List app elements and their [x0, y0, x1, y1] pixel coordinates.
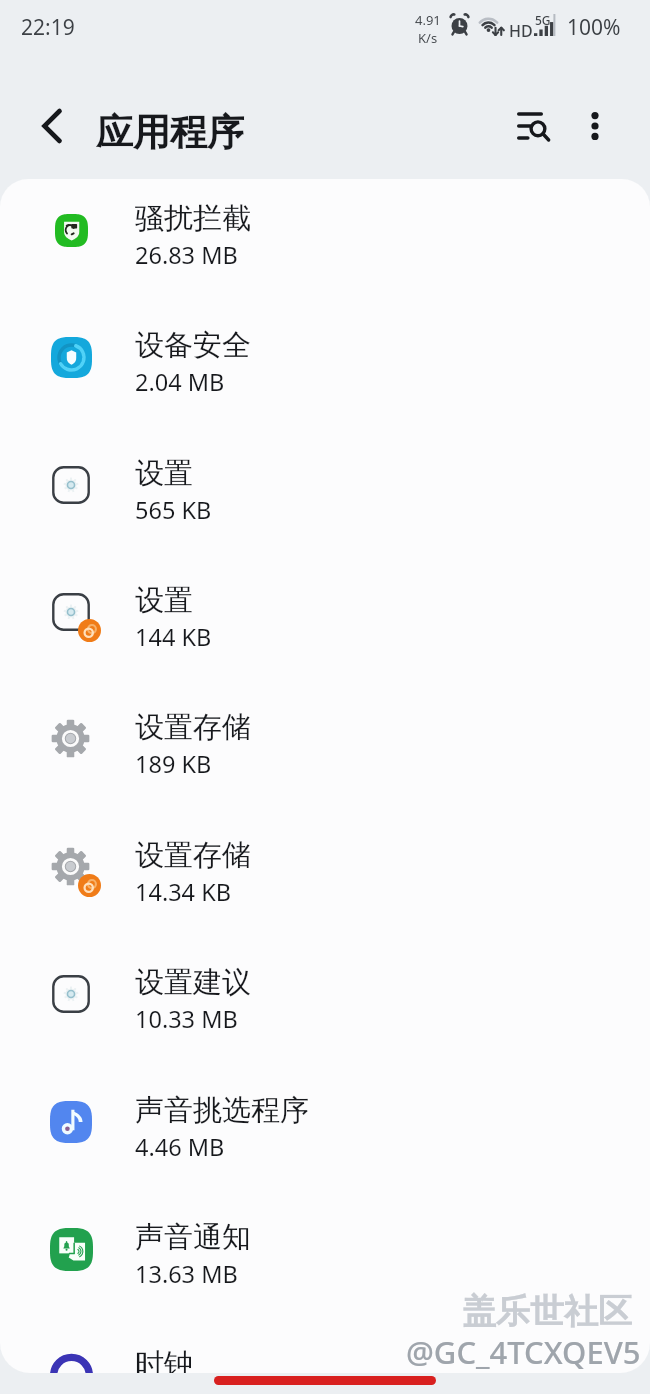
- staticText: 4.46 MB: [135, 1131, 225, 1163]
- staticText: 2.04 MB: [135, 366, 225, 398]
- staticText: 100%: [567, 13, 621, 42]
- staticText: 设置存储: [135, 837, 251, 874]
- button[interactable]: 设置: [0, 552, 650, 679]
- staticText: 4.91: [415, 11, 441, 29]
- button[interactable]: Back: [24, 98, 80, 154]
- staticText: 22:19: [21, 13, 75, 42]
- staticText: 26.83 MB: [135, 239, 238, 271]
- button[interactable]: 设置建议: [0, 934, 650, 1061]
- staticText: 设置存储: [135, 709, 251, 746]
- staticText: 14.34 KB: [135, 876, 231, 908]
- staticText: 设置建议: [135, 964, 251, 1001]
- staticText: 设置: [135, 582, 193, 619]
- staticText: 声音挑选程序: [135, 1092, 309, 1129]
- button[interactable]: 设置存储: [0, 807, 650, 934]
- staticText: 声音通知: [135, 1219, 251, 1256]
- staticText: 10.33 MB: [135, 1003, 238, 1035]
- staticText: 144 KB: [135, 621, 212, 653]
- button[interactable]: 声音通知: [0, 1189, 650, 1316]
- staticText: 189 KB: [135, 748, 212, 780]
- button[interactable]: 设置: [0, 425, 650, 552]
- button[interactable]: 声音挑选程序: [0, 1062, 650, 1189]
- staticText: 盖乐世社区: [462, 1290, 632, 1333]
- button[interactable]: 设置存储: [0, 679, 650, 806]
- button[interactable]: 时钟: [0, 1316, 650, 1373]
- button[interactable]: Search: [505, 98, 561, 154]
- staticText: 设置: [135, 455, 193, 492]
- staticText: 应用程序: [96, 109, 244, 156]
- button[interactable]: 设备安全: [0, 297, 650, 424]
- staticText: HD: [509, 20, 533, 42]
- staticText: 时钟: [135, 1346, 193, 1373]
- button[interactable]: 骚扰拦截: [0, 179, 650, 297]
- button[interactable]: More options: [567, 98, 623, 154]
- staticText: 5G: [535, 12, 551, 28]
- staticText: 设备安全: [135, 327, 251, 364]
- staticText: @GC_4TCXQEV5: [406, 1331, 641, 1373]
- staticText: 13.63 MB: [135, 1258, 238, 1290]
- staticText: K/s: [418, 29, 438, 47]
- staticText: 骚扰拦截: [135, 200, 251, 237]
- staticText: 565 KB: [135, 494, 212, 526]
